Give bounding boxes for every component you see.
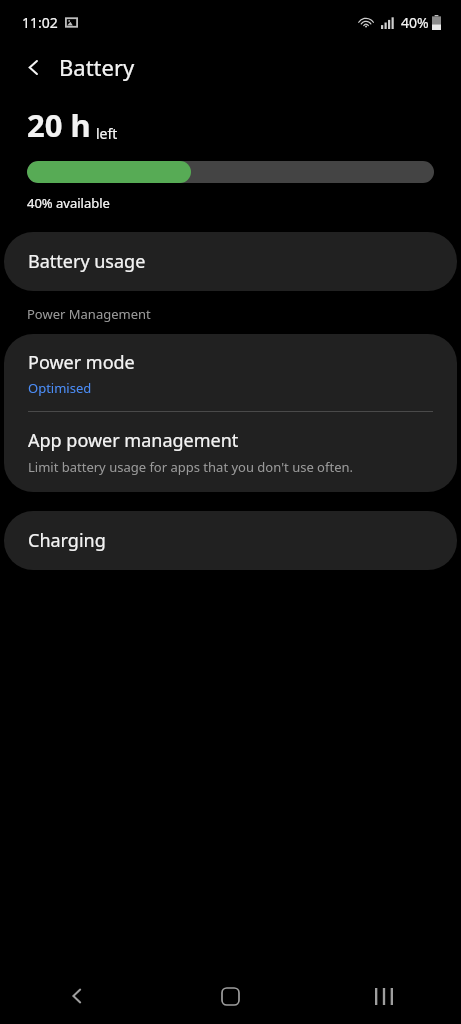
- staticText: Charging: [28, 528, 106, 553]
- button[interactable]: Home: [153, 968, 307, 1024]
- staticText: Optimised: [28, 379, 92, 397]
- button[interactable]: Power mode: [4, 334, 457, 411]
- staticText: Power mode: [28, 350, 135, 375]
- button[interactable]: Charging: [4, 511, 457, 570]
- staticText: App power management: [28, 428, 239, 453]
- staticText: left: [96, 124, 118, 143]
- staticText: Power Management: [27, 305, 151, 323]
- button[interactable]: Battery usage: [4, 232, 457, 291]
- button[interactable]: App power management: [4, 412, 457, 492]
- staticText: Limit battery usage for apps that you do…: [28, 458, 353, 476]
- button[interactable]: Back: [0, 968, 153, 1024]
- staticText: Battery: [59, 52, 135, 82]
- button[interactable]: Recent apps: [307, 968, 461, 1024]
- staticText: 40%: [401, 13, 429, 32]
- staticText: 20 h: [27, 104, 91, 146]
- staticText: 40% available: [27, 194, 110, 212]
- staticText: Battery usage: [28, 249, 146, 274]
- button[interactable]: Back: [12, 46, 54, 88]
- staticText: 11:02: [22, 13, 58, 32]
